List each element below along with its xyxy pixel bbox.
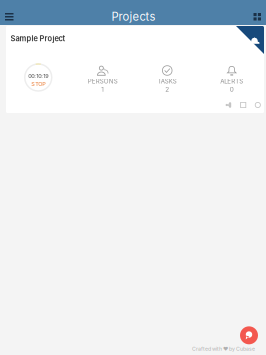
staticText: Projects [111, 10, 155, 23]
button[interactable]: ALERTS [199, 61, 264, 93]
staticText: 2 [165, 86, 169, 93]
button[interactable]: Grid view [248, 10, 266, 23]
button[interactable]: 00:10:19 [6, 63, 70, 91]
button[interactable]: Duplicate [239, 101, 247, 109]
staticText: 1 [101, 86, 104, 93]
button[interactable]: PERSONS [70, 61, 135, 93]
button[interactable]: Settings [254, 101, 262, 109]
staticText: 0 [230, 86, 234, 93]
staticText: Sample Project [11, 34, 66, 43]
staticText: Crafted with ♥ by Cubase [192, 346, 255, 352]
button[interactable]: TASKS [135, 61, 199, 93]
button[interactable]: Menu [0, 10, 18, 23]
staticText: STOP [31, 81, 45, 87]
staticText: 00:10:19 [28, 73, 48, 79]
button[interactable]: Chat [240, 326, 258, 344]
staticText: ALERTS [220, 78, 243, 85]
button[interactable]: Share [224, 101, 232, 109]
staticText: PERSONS [88, 78, 118, 85]
staticText: TASKS [158, 78, 177, 85]
